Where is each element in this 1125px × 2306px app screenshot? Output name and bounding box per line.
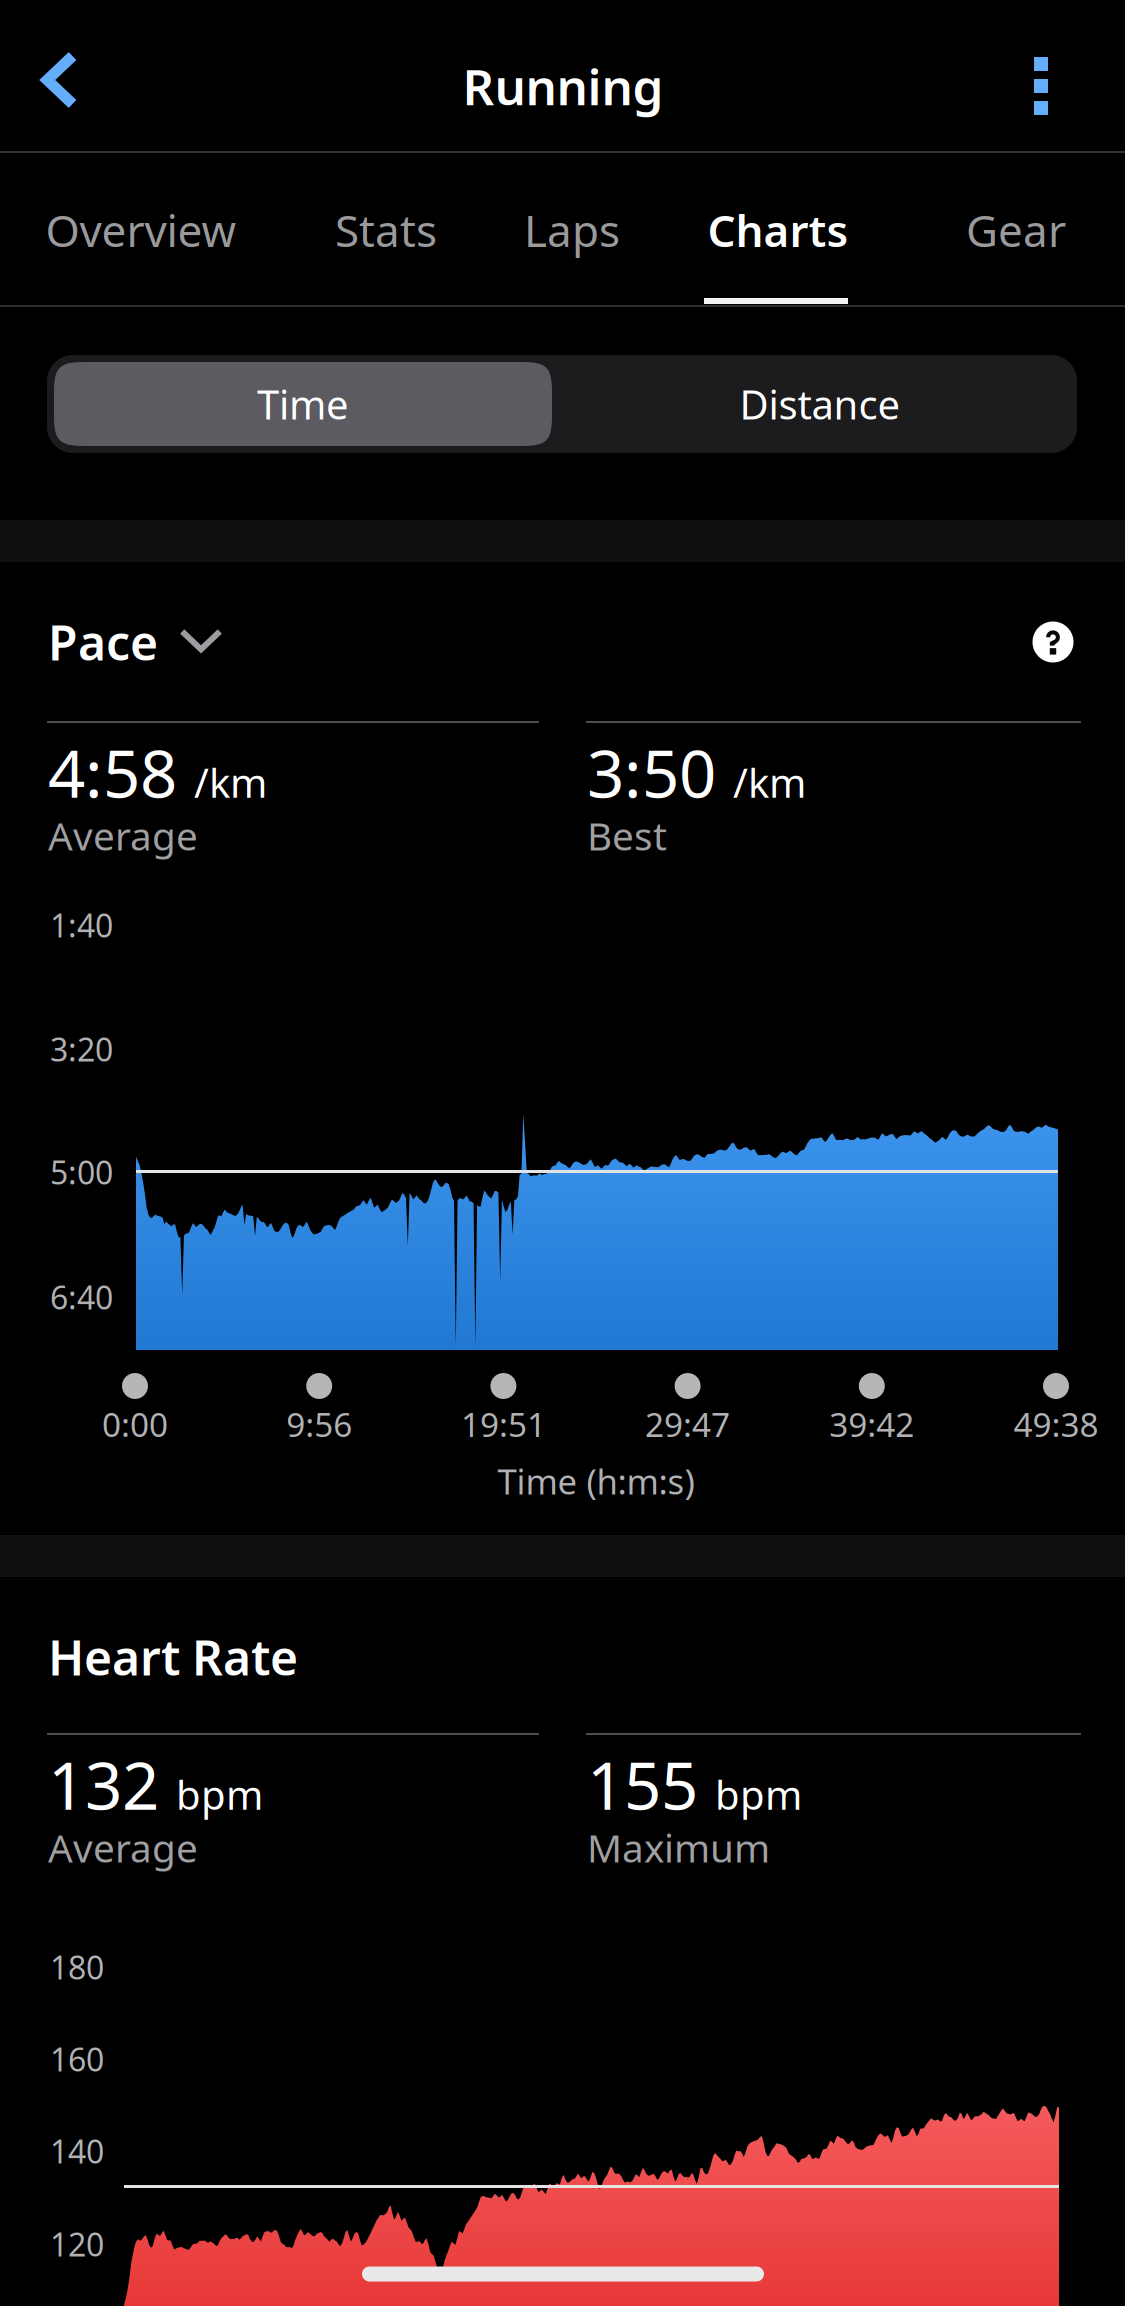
staticText: Average [48,810,198,861]
button[interactable]: Back [0,5,117,155]
staticText: 180 [50,1946,104,1988]
staticText: 0:00 [102,1402,168,1446]
staticText: Running [462,53,663,119]
staticText: Best [587,810,667,861]
staticText: Laps [524,201,620,259]
staticText: 155 [587,1741,698,1828]
staticText: Distance [739,377,900,430]
staticText: Stats [335,201,437,259]
staticText: 140 [50,2130,104,2172]
staticText: 9:56 [286,1402,352,1446]
button[interactable]: Distance [571,362,1069,446]
button[interactable]: Time [54,362,552,446]
staticText: 6:40 [50,1276,113,1318]
staticText: Overview [45,201,236,259]
button[interactable]: Pace [48,594,278,690]
staticText: Time (h:m:s) [497,1458,694,1504]
button[interactable]: Stats [301,154,471,306]
staticText: 5:00 [50,1151,113,1193]
staticText: 3:20 [50,1028,113,1070]
staticText: 1:40 [50,904,113,946]
button[interactable]: More options [981,11,1101,161]
staticText: bpm [715,1768,802,1821]
staticText: 160 [50,2038,104,2080]
staticText: 29:47 [645,1402,730,1446]
staticText: Time [257,377,349,430]
staticText: 39:42 [829,1402,914,1446]
button[interactable]: Charts [683,154,873,306]
staticText: Charts [707,201,848,259]
button[interactable]: Laps [492,154,652,306]
staticText: 4:58 [48,729,177,816]
button[interactable]: Help [1005,594,1101,690]
staticText: 49:38 [1013,1402,1098,1446]
staticText: 132 [48,1741,159,1828]
staticText: 19:51 [461,1402,546,1446]
staticText: bpm [176,1768,263,1821]
staticText: Heart Rate [48,1625,298,1689]
staticText: Pace [48,610,158,674]
staticText: /km [194,756,267,809]
staticText: /km [733,756,806,809]
staticText: 3:50 [587,729,716,816]
staticText: Gear [966,201,1066,259]
button[interactable]: Overview [16,154,266,306]
button[interactable]: Gear [931,154,1101,306]
staticText: Average [48,1822,198,1873]
staticText: 120 [50,2223,104,2265]
staticText: Maximum [587,1822,770,1873]
